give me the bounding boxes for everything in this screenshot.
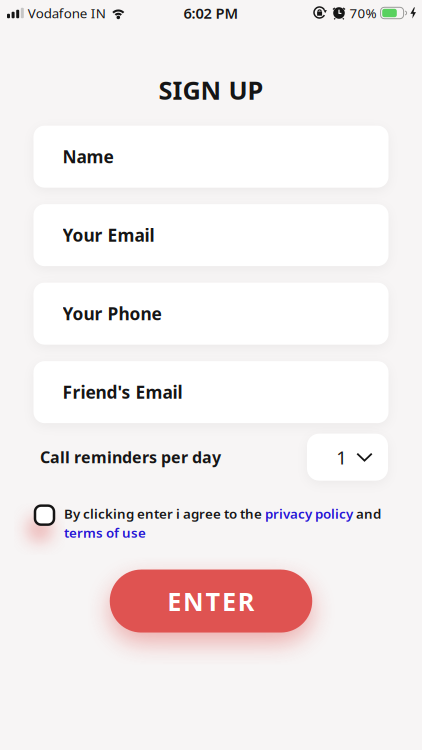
button[interactable]: Name (33, 126, 388, 188)
button[interactable]: Call reminders per day (307, 434, 388, 481)
button[interactable]: Agree to terms (35, 506, 54, 525)
staticText: By clicking enter i agree to the (64, 505, 265, 522)
button[interactable]: terms of use (64, 524, 146, 541)
button[interactable]: privacy policy (265, 505, 353, 522)
staticText: Call reminders per day (40, 446, 221, 468)
staticText: Friend's Email (62, 381, 182, 404)
staticText: ENTER (167, 584, 255, 618)
staticText: privacy policy (265, 505, 353, 522)
button[interactable]: Friend's Email (33, 361, 388, 423)
staticText: Vodafone IN (28, 4, 106, 22)
staticText: 1 (336, 445, 347, 469)
button[interactable]: Your Email (33, 204, 388, 266)
staticText: Your Email (62, 224, 154, 247)
staticText: SIGN UP (158, 73, 263, 107)
staticText: terms of use (64, 524, 146, 541)
staticText: 70% (350, 4, 377, 22)
button[interactable]: ENTER (110, 570, 312, 633)
staticText: and (353, 505, 381, 522)
staticText: 6:02 PM (183, 3, 238, 23)
button[interactable]: Your Phone (33, 283, 388, 345)
staticText: Name (62, 145, 113, 168)
staticText: Your Phone (62, 302, 161, 325)
